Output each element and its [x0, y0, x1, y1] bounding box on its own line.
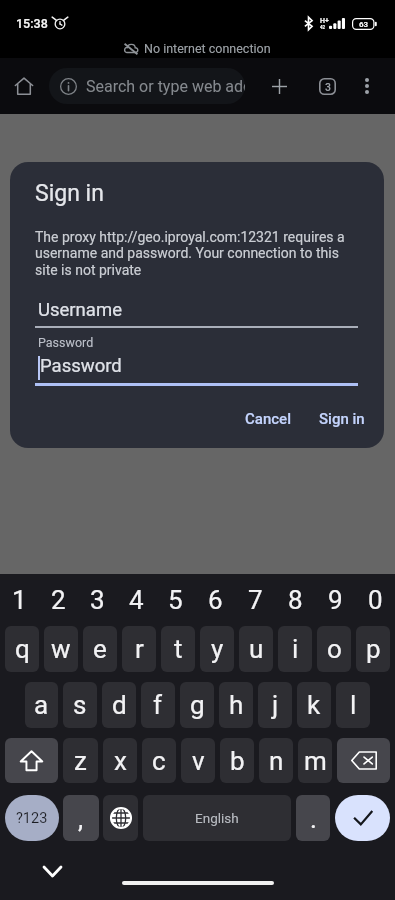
button[interactable]: Tabs, 3 open: [311, 70, 343, 102]
staticText: i: [292, 634, 299, 664]
button[interactable]: English: [143, 795, 291, 841]
staticText: H+: [320, 17, 329, 25]
button[interactable]: Sign in: [310, 403, 374, 435]
button[interactable]: s: [63, 682, 97, 728]
staticText: d: [112, 690, 127, 720]
staticText: f: [153, 690, 163, 720]
button[interactable]: x: [103, 738, 137, 783]
staticText: 6: [208, 585, 223, 615]
button[interactable]: ?123: [5, 795, 59, 841]
staticText: y: [211, 634, 224, 664]
button[interactable]: 3: [78, 574, 117, 626]
button[interactable]: d: [102, 682, 136, 728]
staticText: 9: [328, 585, 343, 615]
button[interactable]: Change language: [103, 795, 138, 841]
button[interactable]: n: [259, 738, 293, 783]
staticText: ?123: [16, 810, 48, 827]
button[interactable]: q: [5, 626, 39, 672]
staticText: n: [269, 746, 284, 776]
staticText: m: [304, 746, 327, 776]
button[interactable]: Search or type web address: [49, 68, 245, 104]
staticText: 3: [325, 81, 331, 93]
staticText: English: [195, 810, 239, 826]
button[interactable]: 0: [355, 574, 395, 626]
button[interactable]: Backspace: [337, 738, 390, 783]
staticText: 1: [12, 585, 27, 615]
staticText: Password: [40, 355, 122, 377]
button[interactable]: r: [122, 626, 156, 672]
button[interactable]: 5: [156, 574, 195, 626]
staticText: g: [190, 690, 205, 720]
button[interactable]: More options: [351, 70, 383, 102]
button[interactable]: New tab: [263, 70, 295, 102]
staticText: 4: [129, 585, 144, 615]
staticText: q: [15, 634, 30, 664]
button[interactable]: 9: [315, 574, 355, 626]
staticText: No internet connection: [144, 41, 271, 56]
staticText: ,: [78, 804, 84, 834]
button[interactable]: c: [142, 738, 176, 783]
button[interactable]: t: [161, 626, 195, 672]
staticText: Username: [38, 299, 122, 321]
button[interactable]: u: [239, 626, 273, 672]
button[interactable]: Shift: [5, 738, 58, 783]
button[interactable]: w: [44, 626, 78, 672]
staticText: 8: [288, 585, 303, 615]
button[interactable]: k: [297, 682, 331, 728]
button[interactable]: 4: [117, 574, 156, 626]
button[interactable]: g: [180, 682, 214, 728]
staticText: w: [51, 634, 71, 664]
staticText: b: [230, 746, 245, 776]
button[interactable]: 6: [195, 574, 235, 626]
button[interactable]: y: [200, 626, 234, 672]
staticText: 63: [359, 20, 369, 29]
button[interactable]: Home: [8, 70, 40, 102]
button[interactable]: 7: [235, 574, 275, 626]
button[interactable]: ,: [63, 795, 99, 841]
staticText: Cancel: [245, 410, 292, 428]
staticText: u: [249, 634, 264, 664]
staticText: o: [327, 634, 342, 664]
staticText: Sign in: [35, 180, 104, 207]
staticText: l: [350, 690, 357, 720]
staticText: c: [152, 746, 166, 776]
button[interactable]: i: [278, 626, 312, 672]
staticText: v: [192, 746, 205, 776]
staticText: 2: [51, 585, 66, 615]
staticText: 0: [368, 585, 383, 615]
staticText: x: [114, 746, 127, 776]
staticText: k: [307, 690, 321, 720]
button[interactable]: l: [336, 682, 370, 728]
staticText: Password: [38, 335, 94, 350]
button[interactable]: j: [258, 682, 292, 728]
button[interactable]: m: [298, 738, 332, 783]
staticText: z: [74, 746, 87, 776]
staticText: j: [272, 690, 279, 720]
button[interactable]: a: [25, 682, 58, 728]
staticText: Search or type web address: [86, 77, 245, 96]
button[interactable]: h: [219, 682, 253, 728]
staticText: 5: [168, 585, 183, 615]
button[interactable]: Hide keyboard: [36, 855, 68, 887]
staticText: e: [93, 634, 107, 664]
staticText: p: [366, 634, 381, 664]
button[interactable]: 2: [39, 574, 78, 626]
staticText: h: [229, 690, 244, 720]
button[interactable]: f: [141, 682, 175, 728]
button[interactable]: o: [317, 626, 351, 672]
button[interactable]: 8: [275, 574, 315, 626]
button[interactable]: p: [356, 626, 390, 672]
staticText: t: [174, 634, 183, 664]
staticText: 7: [248, 585, 263, 615]
button[interactable]: Enter: [335, 795, 390, 841]
button[interactable]: b: [220, 738, 254, 783]
staticText: 3: [90, 585, 105, 615]
staticText: r: [135, 634, 144, 664]
staticText: 15:38: [16, 16, 48, 31]
button[interactable]: v: [181, 738, 215, 783]
button[interactable]: z: [63, 738, 98, 783]
button[interactable]: 1: [0, 574, 39, 626]
button[interactable]: .: [296, 795, 330, 841]
button[interactable]: Cancel: [236, 403, 301, 435]
button[interactable]: e: [83, 626, 117, 672]
